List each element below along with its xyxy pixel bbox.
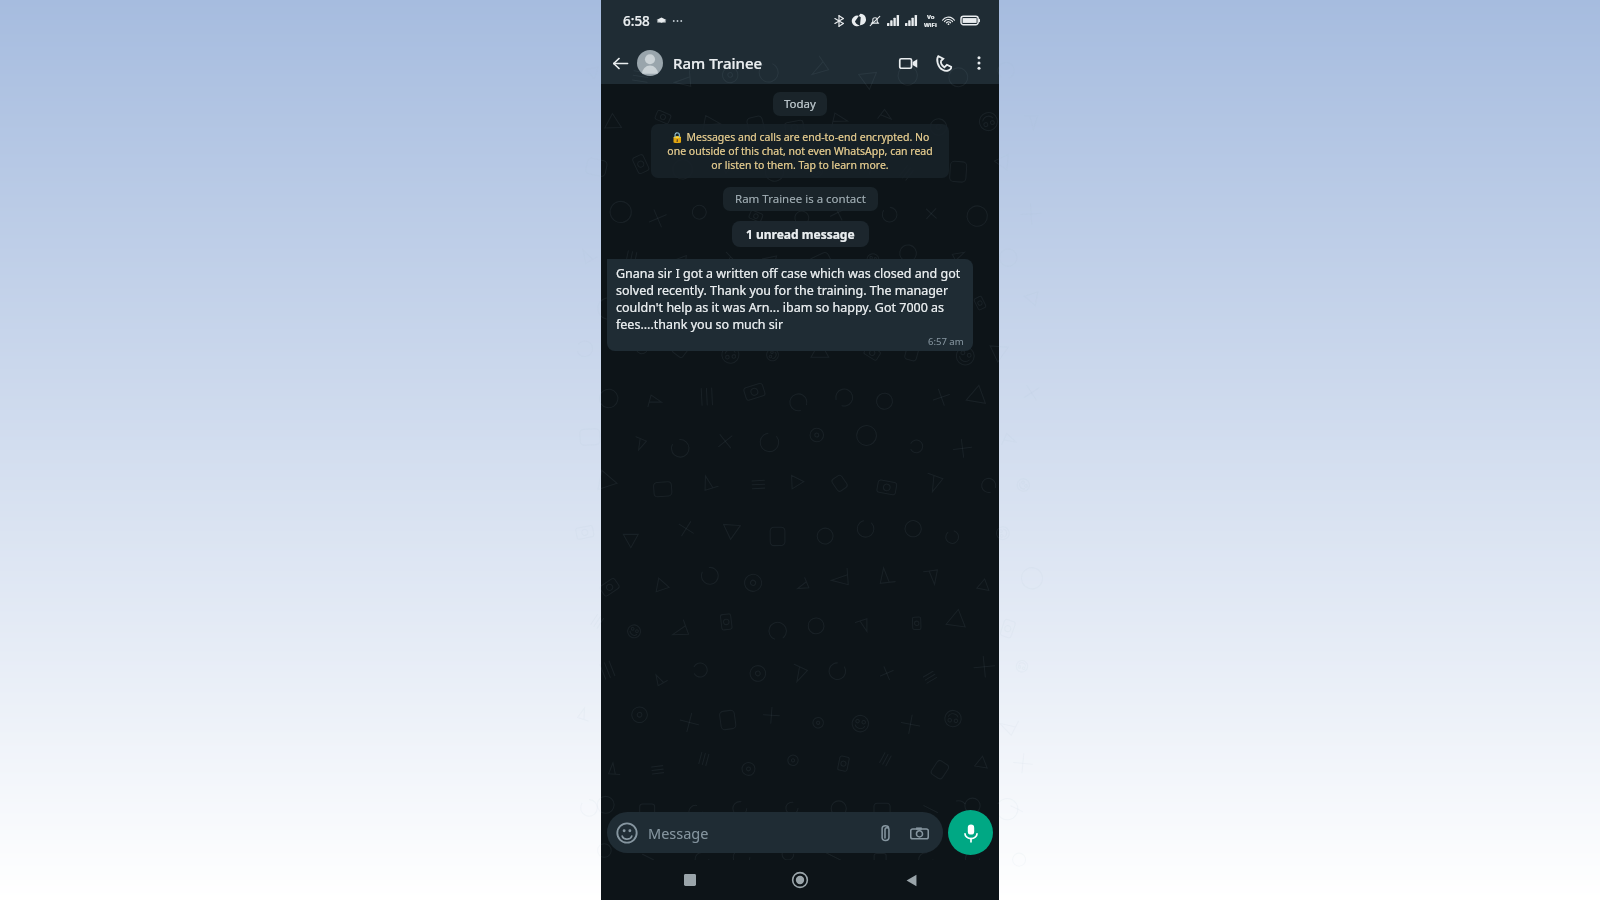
button[interactable]: Video call <box>890 45 926 81</box>
button[interactable]: 1 unread message <box>732 221 869 247</box>
staticText: WiFi <box>924 21 937 29</box>
button[interactable]: Recent apps <box>668 860 712 900</box>
staticText: Ram Trainee is a contact <box>735 191 866 207</box>
staticText: 6:58 <box>623 12 650 30</box>
button[interactable]: Today <box>773 92 827 116</box>
button[interactable]: 🔒 Messages and calls are end-to-end encr… <box>651 124 949 178</box>
button[interactable]: Back <box>889 860 933 900</box>
other: Sticker <box>616 822 638 844</box>
button[interactable]: Voice call <box>926 45 962 81</box>
button[interactable]: Ram Trainee <box>637 41 890 84</box>
button[interactable]: Home <box>778 860 822 900</box>
button[interactable]: Gnana sir I got a written off case which… <box>607 259 973 351</box>
staticText: 6:57 am <box>928 335 964 348</box>
button[interactable]: Camera <box>906 820 932 846</box>
button[interactable]: Sticker <box>607 812 943 853</box>
staticText: Message <box>648 823 709 843</box>
button[interactable]: More options <box>962 46 996 80</box>
button[interactable]: Back <box>606 49 634 77</box>
staticText: Gnana sir I got a written off case which… <box>616 265 964 333</box>
staticText: 🔒 Messages and calls are end-to-end encr… <box>663 130 937 172</box>
button[interactable]: Record voice message <box>948 810 993 855</box>
button[interactable]: Ram Trainee is a contact <box>723 187 878 211</box>
staticText: Vo <box>927 13 935 21</box>
staticText: 1 unread message <box>746 226 855 242</box>
staticText: Ram Trainee <box>673 53 763 73</box>
staticText: Today <box>784 96 816 112</box>
button[interactable]: Attach <box>872 820 898 846</box>
